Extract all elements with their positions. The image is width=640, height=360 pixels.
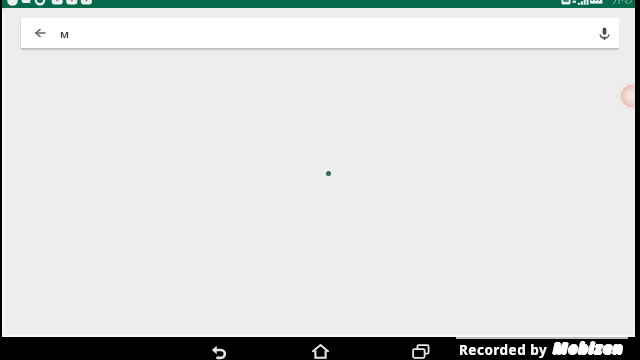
staticText: Mobizen — [553, 337, 624, 359]
staticText: 21:32 — [612, 0, 633, 4]
staticText: Mobizen — [552, 337, 623, 359]
button[interactable]: Recent apps — [405, 342, 437, 360]
button[interactable]: Back — [21, 18, 59, 48]
staticText: Mobizen — [553, 336, 624, 358]
staticText: Recorded by — [459, 341, 548, 359]
button[interactable]: Mobizen recorder — [618, 82, 640, 110]
staticText: M — [60, 28, 69, 41]
button[interactable]: Back — [203, 342, 235, 360]
staticText: Mobizen — [554, 337, 625, 359]
button[interactable]: Home — [304, 342, 336, 360]
staticText: Mobizen — [553, 338, 624, 360]
button[interactable]: Voice search — [590, 18, 619, 48]
